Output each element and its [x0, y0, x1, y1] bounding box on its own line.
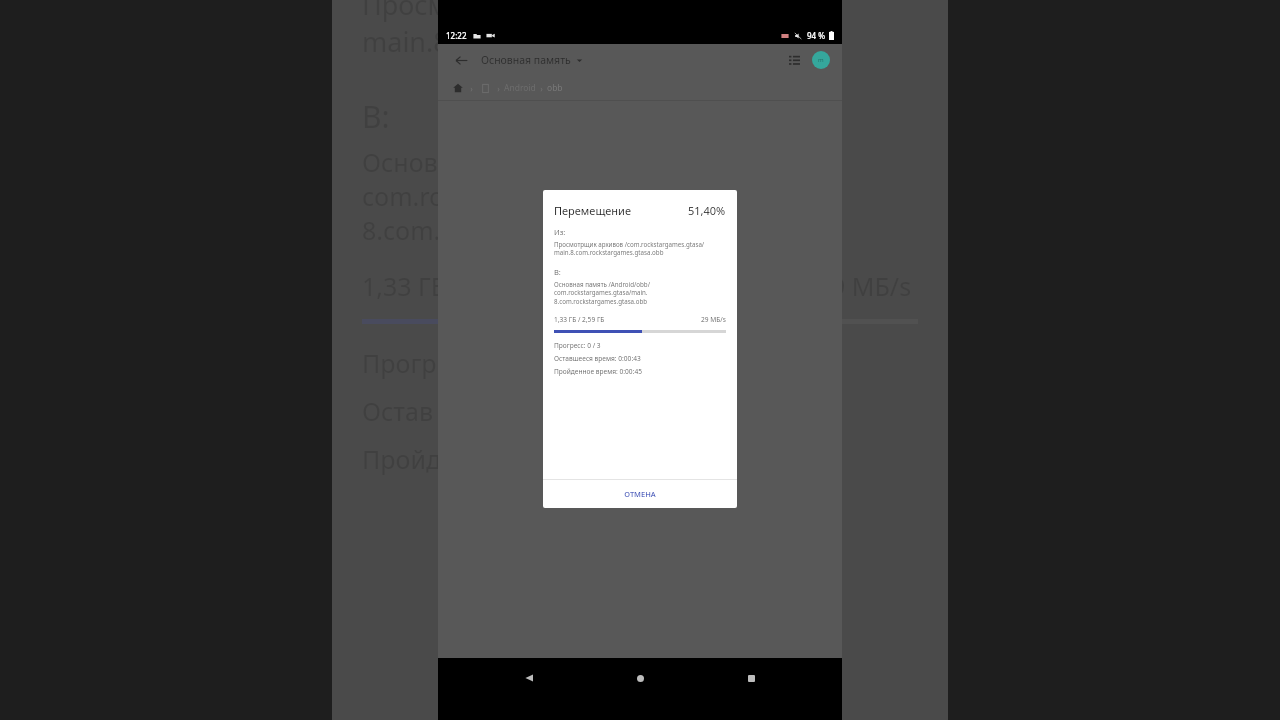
staticText: 94 %: [807, 30, 826, 41]
staticText: 8.com.: [362, 213, 441, 247]
staticText: 51,40%: [688, 203, 726, 218]
button[interactable]: obb: [547, 82, 563, 94]
staticText: ОТМЕНА: [624, 489, 656, 499]
staticText: 1,33 ГБ / 2,59 ГБ: [554, 315, 605, 324]
button[interactable]: Back: [509, 658, 549, 698]
staticText: Из:: [554, 227, 566, 237]
staticText: Пройденное время: 0:00:45: [554, 367, 642, 376]
staticText: Основная память /Android/obb/ com.rockst…: [554, 280, 650, 305]
button[interactable]: Home: [620, 658, 660, 698]
staticText: Перемещение: [554, 203, 631, 218]
staticText: main.8: [362, 23, 449, 60]
button[interactable]: Device storage: [477, 80, 493, 96]
staticText: Остав: [362, 394, 433, 428]
staticText: 29 МБ/s: [701, 315, 726, 324]
button[interactable]: Back: [450, 49, 472, 71]
button[interactable]: Основная память: [481, 53, 583, 67]
button[interactable]: ОТМЕНА: [543, 480, 737, 508]
staticText: Основная память: [481, 53, 571, 67]
staticText: Пройд: [362, 442, 442, 476]
staticText: m: [818, 56, 824, 64]
staticText: Прогр: [362, 346, 437, 380]
button[interactable]: Android: [504, 82, 536, 94]
staticText: 1,33 ГБ: [362, 269, 447, 303]
staticText: 12:22: [446, 30, 467, 41]
staticText: В:: [362, 96, 390, 137]
staticText: Оставшееся время: 0:00:43: [554, 354, 641, 363]
staticText: Просм: [362, 0, 449, 23]
button[interactable]: View as list: [784, 50, 804, 70]
staticText: Основ: [362, 145, 438, 179]
button[interactable]: Account: [812, 51, 830, 69]
staticText: com.ro: [362, 179, 445, 213]
staticText: В:: [554, 267, 561, 277]
staticText: 9 МБ/s: [831, 269, 912, 303]
staticText: Прогресс: 0 / 3: [554, 341, 601, 350]
button[interactable]: Home: [450, 80, 466, 96]
staticText: Просмотрщик архивов /com.rockstargames.g…: [554, 240, 705, 256]
button[interactable]: Recent apps: [731, 658, 771, 698]
